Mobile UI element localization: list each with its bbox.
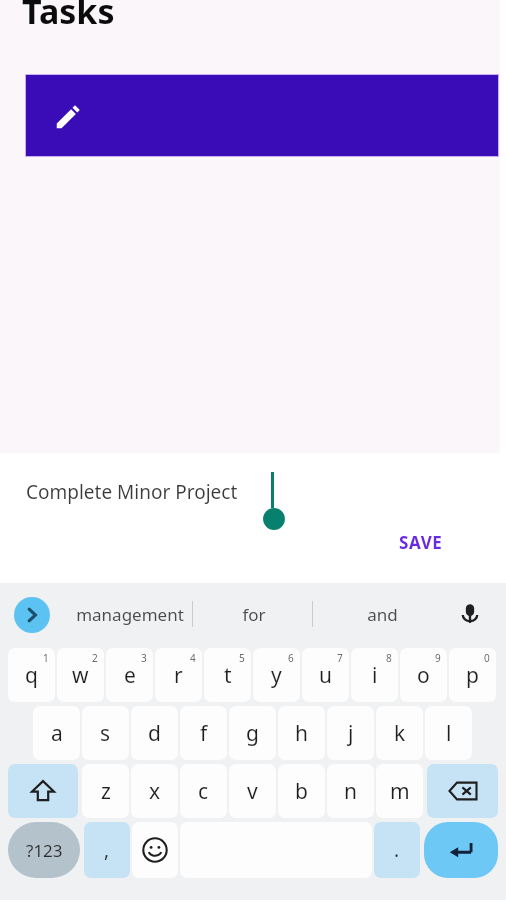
- button[interactable]: d: [131, 706, 178, 760]
- button[interactable]: i: [351, 648, 398, 702]
- button[interactable]: for: [208, 583, 300, 645]
- staticText: 7: [337, 651, 343, 665]
- button[interactable]: SAVE: [385, 525, 457, 560]
- button[interactable]: .: [374, 822, 420, 878]
- button[interactable]: ?123: [8, 822, 80, 878]
- staticText: b: [295, 777, 308, 806]
- staticText: 4: [190, 651, 196, 665]
- button[interactable]: y: [253, 648, 300, 702]
- button[interactable]: n: [327, 764, 374, 818]
- button[interactable]: Shift: [8, 764, 78, 818]
- staticText: g: [246, 719, 259, 748]
- staticText: d: [148, 719, 161, 748]
- staticText: ?123: [26, 839, 63, 862]
- button[interactable]: a: [33, 706, 80, 760]
- button[interactable]: h: [278, 706, 325, 760]
- button[interactable]: Tasks: [22, 0, 115, 34]
- button[interactable]: c: [180, 764, 227, 818]
- button[interactable]: Voice input: [452, 597, 488, 633]
- staticText: t: [224, 661, 232, 690]
- button[interactable]: More suggestions: [14, 597, 50, 633]
- button[interactable]: q: [8, 648, 55, 702]
- staticText: s: [100, 719, 111, 748]
- staticText: a: [51, 719, 63, 748]
- staticText: m: [390, 777, 410, 806]
- staticText: i: [372, 661, 378, 690]
- button[interactable]: e: [106, 648, 153, 702]
- staticText: h: [295, 719, 308, 748]
- button[interactable]: p: [449, 648, 496, 702]
- button[interactable]: w: [57, 648, 104, 702]
- staticText: u: [319, 661, 332, 690]
- staticText: p: [466, 661, 479, 690]
- staticText: q: [25, 661, 38, 690]
- staticText: SAVE: [399, 531, 443, 554]
- button[interactable]: Edit task: [26, 75, 498, 156]
- button[interactable]: j: [327, 706, 374, 760]
- button[interactable]: v: [229, 764, 276, 818]
- button[interactable]: x: [131, 764, 178, 818]
- staticText: j: [348, 719, 354, 748]
- staticText: e: [124, 661, 136, 690]
- staticText: Tasks: [22, 0, 115, 34]
- staticText: 5: [239, 651, 245, 665]
- button[interactable]: s: [82, 706, 129, 760]
- button[interactable]: ,: [84, 822, 130, 878]
- staticText: 3: [141, 651, 147, 665]
- button[interactable]: z: [82, 764, 129, 818]
- staticText: .: [394, 837, 400, 863]
- staticText: c: [198, 777, 209, 806]
- button[interactable]: m: [376, 764, 423, 818]
- staticText: f: [200, 719, 208, 748]
- button[interactable]: l: [425, 706, 472, 760]
- button[interactable]: Complete Minor Project: [26, 479, 238, 505]
- staticText: 6: [288, 651, 294, 665]
- staticText: w: [72, 661, 89, 690]
- staticText: x: [149, 777, 161, 806]
- staticText: l: [446, 719, 452, 748]
- staticText: management: [76, 603, 184, 626]
- staticText: r: [174, 661, 183, 690]
- button[interactable]: management: [68, 583, 192, 645]
- button[interactable]: b: [278, 764, 325, 818]
- staticText: for: [242, 603, 266, 626]
- staticText: 8: [386, 651, 392, 665]
- button[interactable]: t: [204, 648, 251, 702]
- staticText: and: [367, 603, 398, 626]
- button[interactable]: Backspace: [427, 764, 498, 818]
- staticText: ,: [104, 837, 110, 863]
- staticText: o: [417, 661, 430, 690]
- staticText: 0: [484, 651, 490, 665]
- staticText: 2: [92, 651, 98, 665]
- button[interactable]: o: [400, 648, 447, 702]
- staticText: y: [271, 661, 282, 690]
- button[interactable]: Enter: [424, 822, 498, 878]
- staticText: v: [247, 777, 258, 806]
- button[interactable]: r: [155, 648, 202, 702]
- staticText: 1: [43, 651, 49, 665]
- button[interactable]: k: [376, 706, 423, 760]
- button[interactable]: Emoji: [132, 822, 178, 878]
- staticText: n: [344, 777, 357, 806]
- staticText: z: [101, 777, 111, 806]
- button[interactable]: u: [302, 648, 349, 702]
- button[interactable]: f: [180, 706, 227, 760]
- button[interactable]: and: [328, 583, 436, 645]
- staticText: k: [394, 719, 406, 748]
- staticText: 9: [435, 651, 441, 665]
- button[interactable]: g: [229, 706, 276, 760]
